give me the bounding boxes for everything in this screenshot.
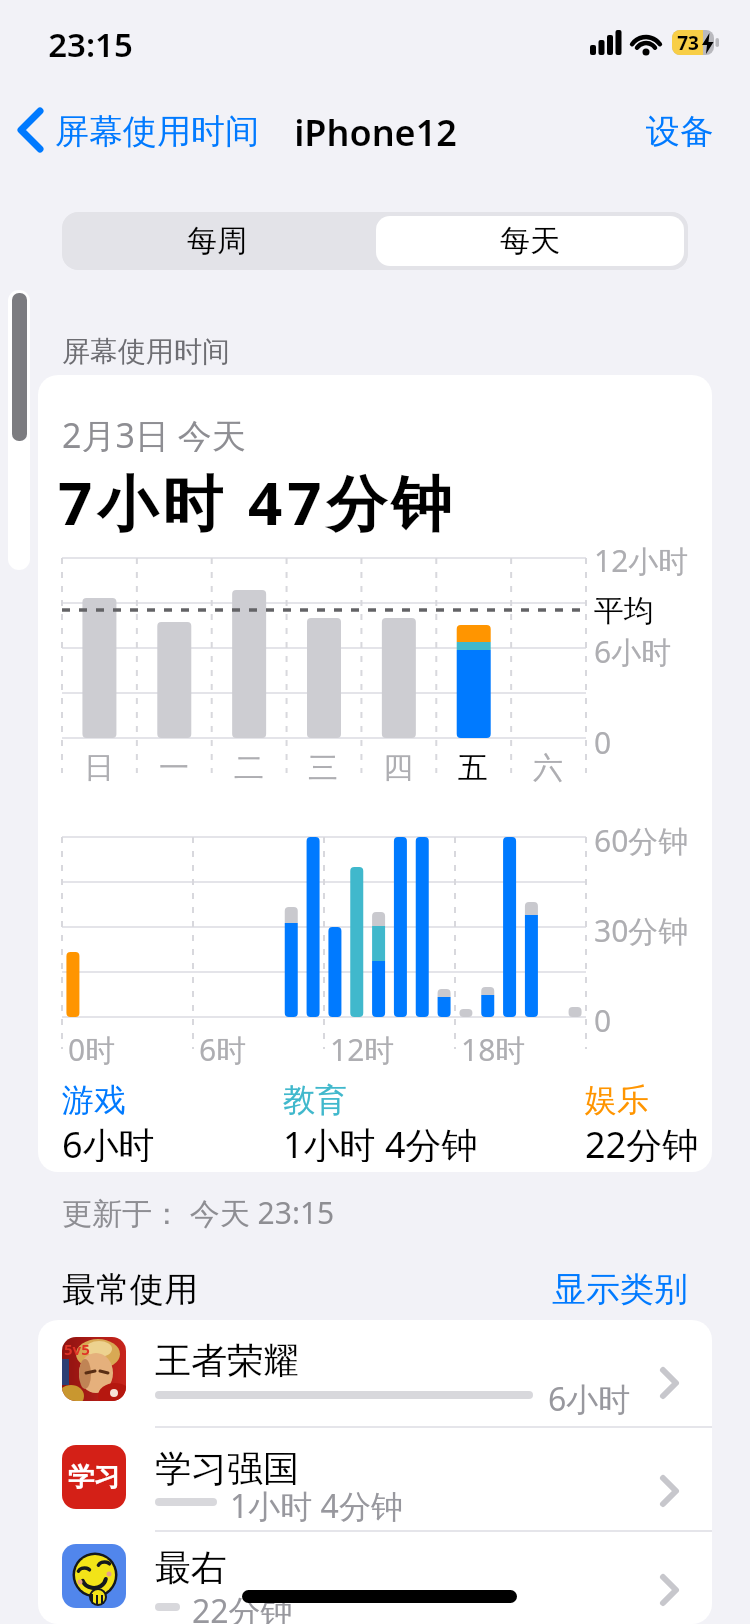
staticText: 游戏 [62, 1080, 126, 1118]
staticText: 73 [677, 30, 699, 56]
staticText: 每周 [187, 222, 247, 260]
staticText: 6时 [199, 1029, 247, 1065]
staticText: 18时 [461, 1029, 526, 1065]
staticText: 一 [159, 749, 189, 785]
staticText: 22分钟 [192, 1589, 293, 1624]
staticText: 日 [84, 749, 114, 785]
button[interactable] [38, 1527, 712, 1624]
staticText: 平均 [594, 592, 654, 628]
staticText: 显示类别 [552, 1268, 688, 1310]
button[interactable]: 每天 [376, 212, 684, 270]
staticText: 最常使用 [62, 1268, 198, 1310]
staticText: 三 [308, 749, 338, 785]
staticText: 二 [234, 749, 264, 785]
staticText: 2月3日 今天 [62, 412, 246, 452]
staticText: 22分钟 [585, 1120, 699, 1162]
staticText: 12时 [330, 1029, 395, 1065]
staticText: 12小时 [594, 540, 689, 576]
staticText: 六 [533, 749, 563, 785]
staticText: 6小时 [548, 1377, 631, 1415]
staticText: 1小时 4分钟 [230, 1484, 403, 1522]
staticText: 屏幕使用时间 [55, 110, 259, 152]
staticText: 王者荣耀 [155, 1338, 299, 1378]
staticText: 最右 [155, 1545, 227, 1585]
staticText: 0 [594, 1000, 612, 1036]
button[interactable] [16, 108, 46, 152]
staticText: 6小时 [62, 1120, 155, 1162]
staticText: 设备 [646, 110, 714, 152]
button[interactable]: 屏幕使用时间 [55, 110, 295, 152]
button[interactable]: 设备 [570, 110, 714, 152]
staticText: 教育 [283, 1080, 347, 1118]
staticText: 5v5 [64, 1339, 90, 1357]
staticText: iPhone12 [294, 108, 457, 152]
button[interactable] [38, 1428, 712, 1534]
staticText: 0时 [68, 1029, 116, 1065]
button[interactable]: 显示类别 [420, 1268, 688, 1310]
staticText: 每天 [500, 222, 560, 260]
staticText: 1小时 4分钟 [283, 1120, 478, 1162]
staticText: 学习 [68, 1461, 120, 1494]
staticText: 屏幕使用时间 [62, 334, 230, 368]
staticText: 60分钟 [594, 820, 689, 856]
staticText: 学习强国 [155, 1446, 299, 1486]
staticText: 五 [458, 749, 488, 785]
staticText: 30分钟 [594, 910, 689, 946]
staticText: 7小时 47分钟 [58, 461, 457, 537]
staticText: 23:15 [48, 22, 133, 64]
staticText: 6小时 [594, 631, 672, 667]
staticText: 娱乐 [585, 1080, 649, 1118]
staticText: 四 [383, 749, 413, 785]
button[interactable]: 每周 [62, 212, 372, 270]
staticText: 更新于： 今天 23:15 [62, 1192, 335, 1230]
staticText: 0 [594, 722, 612, 758]
button[interactable] [38, 1320, 712, 1426]
